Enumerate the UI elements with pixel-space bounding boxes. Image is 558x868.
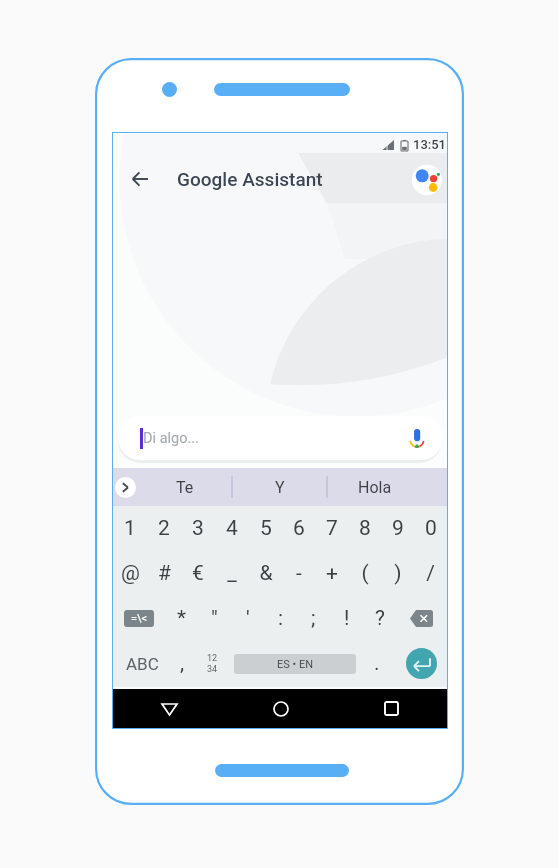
button[interactable]: &: [249, 551, 282, 596]
button[interactable]: 6: [282, 506, 315, 551]
button[interactable]: Di algo...: [118, 416, 443, 460]
button[interactable]: !: [330, 596, 363, 641]
staticText: ?: [375, 606, 385, 631]
button[interactable]: €: [181, 551, 215, 596]
button[interactable]: ): [381, 551, 414, 596]
button[interactable]: Backspace: [396, 596, 447, 641]
button[interactable]: ": [198, 596, 231, 641]
staticText: 9: [392, 516, 404, 541]
staticText: Y: [275, 478, 285, 497]
button[interactable]: Google Assistant: [411, 164, 443, 196]
staticText: ;: [311, 606, 316, 631]
staticText: +: [326, 561, 338, 586]
staticText: ABC: [126, 654, 159, 674]
button[interactable]: 0: [414, 506, 447, 551]
button[interactable]: Back: [113, 689, 225, 728]
staticText: @: [121, 561, 140, 586]
staticText: 7: [326, 516, 338, 541]
staticText: 4: [226, 516, 238, 541]
staticText: Di algo...: [143, 430, 199, 447]
staticText: =\<: [131, 612, 148, 625]
button[interactable]: 7: [315, 506, 348, 551]
staticText: -: [296, 561, 302, 586]
staticText: &: [259, 561, 273, 586]
staticText: !: [344, 606, 350, 631]
button[interactable]: +: [315, 551, 348, 596]
staticText: Te: [176, 478, 194, 497]
staticText: 5: [260, 516, 272, 541]
staticText: _: [227, 561, 237, 586]
button[interactable]: 3: [181, 506, 215, 551]
staticText: 3: [192, 516, 204, 541]
button[interactable]: _: [215, 551, 249, 596]
button[interactable]: @: [113, 551, 147, 596]
button[interactable]: 9: [381, 506, 414, 551]
staticText: 12: [207, 653, 218, 664]
staticText: ,: [180, 651, 185, 676]
button[interactable]: 8: [348, 506, 381, 551]
button[interactable]: Hola: [327, 468, 422, 506]
staticText: 1: [124, 516, 136, 541]
button[interactable]: 1: [113, 506, 147, 551]
button[interactable]: ES • EN: [234, 654, 356, 674]
staticText: ': [246, 606, 250, 631]
button[interactable]: ?: [363, 596, 396, 641]
button[interactable]: Recent apps: [336, 689, 447, 728]
button[interactable]: Te: [137, 468, 232, 506]
button[interactable]: 4: [215, 506, 249, 551]
staticText: (: [361, 561, 369, 586]
staticText: *: [177, 606, 187, 631]
button[interactable]: ABC: [113, 641, 172, 686]
staticText: .: [374, 651, 380, 676]
staticText: 0: [425, 516, 437, 541]
button[interactable]: .: [358, 641, 396, 686]
button[interactable]: Home: [225, 689, 336, 728]
staticText: 2: [158, 516, 170, 541]
button[interactable]: /: [414, 551, 447, 596]
staticText: 34: [207, 664, 218, 675]
button[interactable]: :: [264, 596, 297, 641]
staticText: :: [278, 606, 284, 631]
button[interactable]: ;: [297, 596, 330, 641]
button[interactable]: Y: [232, 468, 327, 506]
staticText: 8: [359, 516, 371, 541]
button[interactable]: (: [348, 551, 381, 596]
staticText: #: [158, 561, 171, 586]
staticText: Hola: [358, 478, 392, 497]
button[interactable]: 2: [147, 506, 181, 551]
staticText: 6: [293, 516, 305, 541]
staticText: ": [211, 606, 218, 631]
button[interactable]: 5: [249, 506, 282, 551]
button[interactable]: *: [165, 596, 198, 641]
staticText: ES • EN: [277, 658, 314, 671]
staticText: ): [394, 561, 402, 586]
button[interactable]: ,: [172, 641, 192, 686]
button[interactable]: Enter: [396, 641, 447, 686]
button[interactable]: ': [231, 596, 264, 641]
button[interactable]: #: [147, 551, 181, 596]
button[interactable]: Voice search: [410, 429, 424, 448]
button[interactable]: More symbols: [113, 596, 165, 641]
button[interactable]: Back: [123, 162, 157, 196]
staticText: Google Assistant: [177, 168, 323, 190]
button[interactable]: -: [282, 551, 315, 596]
staticText: /: [426, 561, 435, 586]
button[interactable]: Number pad: [192, 641, 232, 686]
staticText: €: [192, 561, 204, 586]
staticText: 13:51: [413, 137, 447, 152]
button[interactable]: More suggestions: [115, 477, 136, 498]
